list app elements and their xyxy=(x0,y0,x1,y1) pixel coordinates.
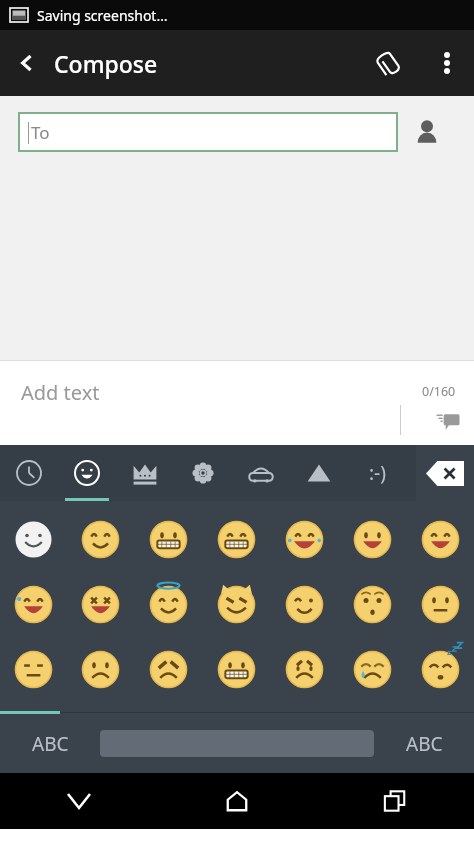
button[interactable]: Emoji 18 xyxy=(270,637,338,702)
button[interactable]: Emoji 15 xyxy=(67,637,134,702)
staticText: To xyxy=(31,121,50,144)
staticText: Compose xyxy=(54,48,158,79)
button[interactable]: Attach xyxy=(360,30,420,96)
button[interactable]: To xyxy=(18,112,398,152)
staticText: Saving screenshot… xyxy=(37,6,168,25)
button[interactable]: Emoji 20 xyxy=(406,637,474,702)
button[interactable]: Emoji 17 xyxy=(202,637,270,702)
button[interactable]: Emoji 12 xyxy=(338,572,406,637)
button[interactable]: Emoji 14 xyxy=(0,637,67,702)
button[interactable]: Recent xyxy=(0,445,58,501)
button[interactable]: Emoji 3 xyxy=(202,507,270,572)
button[interactable]: Emoji 19 xyxy=(338,637,406,702)
button[interactable]: Emoji 5 xyxy=(338,507,406,572)
staticText: ABC xyxy=(32,731,69,757)
button[interactable]: Emoji 7 xyxy=(0,572,67,637)
button[interactable]: Emoji 4 xyxy=(270,507,338,572)
staticText: :-) xyxy=(369,460,386,486)
button[interactable]: Travel xyxy=(232,445,290,501)
button[interactable]: Home xyxy=(158,773,316,829)
button[interactable]: Emoji 6 xyxy=(406,507,474,572)
button[interactable]: Symbols xyxy=(348,445,406,501)
button[interactable]: Emoji 8 xyxy=(67,572,134,637)
staticText: 0/160 xyxy=(422,383,456,400)
button[interactable]: Add text xyxy=(21,379,100,406)
button[interactable]: People xyxy=(116,445,174,501)
button[interactable]: Message type xyxy=(400,405,460,437)
button[interactable]: Nature xyxy=(174,445,232,501)
button[interactable]: Smileys xyxy=(58,445,116,501)
button[interactable]: Emoji 9 xyxy=(134,572,202,637)
button[interactable]: Back xyxy=(0,30,54,96)
button[interactable]: ABC xyxy=(0,714,100,773)
button[interactable]: Hide keyboard xyxy=(0,773,158,829)
staticText: ABC xyxy=(406,731,443,757)
button[interactable]: Objects xyxy=(290,445,348,501)
button[interactable]: Emoji 11 xyxy=(270,572,338,637)
button[interactable]: Emoji 1 xyxy=(67,507,134,572)
button[interactable]: More options xyxy=(420,30,474,96)
button[interactable]: Pick contact xyxy=(398,96,456,168)
button[interactable]: ABC xyxy=(374,714,474,773)
button[interactable]: Emoji 2 xyxy=(134,507,202,572)
button[interactable]: Emoji 10 xyxy=(202,572,270,637)
button[interactable]: Emoji 13 xyxy=(406,572,474,637)
button[interactable]: Emoji 0 xyxy=(0,507,67,572)
button[interactable]: Emoji 16 xyxy=(134,637,202,702)
button[interactable]: Recent apps xyxy=(316,773,474,829)
button[interactable]: Delete xyxy=(416,445,474,501)
